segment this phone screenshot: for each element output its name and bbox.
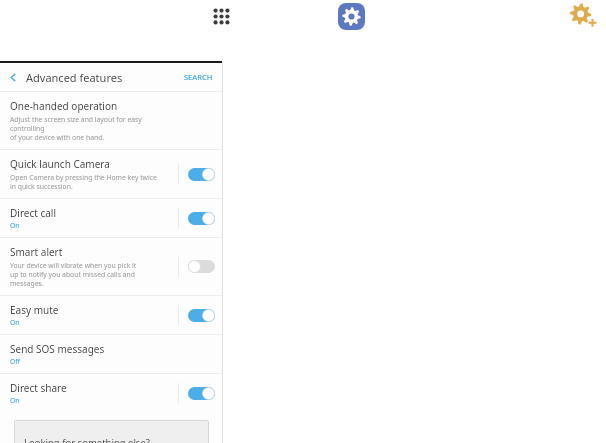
staticText: Direct call [10,206,57,220]
staticText: Advanced features [26,70,123,85]
staticText: Quick launch Camera [10,157,110,171]
staticText: Easy mute [10,303,59,317]
staticText: One-handed operation [10,99,118,113]
staticText: On [10,396,20,405]
button[interactable]: Direct call switch [179,212,223,225]
staticText: Smart alert [10,245,63,259]
button[interactable]: Easy mute switch [179,309,223,322]
button[interactable]: Back [0,63,26,91]
staticText: Looking for something else? [24,436,150,443]
staticText: Send SOS messages [10,342,105,356]
button[interactable]: Settings [338,3,365,30]
staticText: Your device will vibrate when you pick i… [10,261,137,288]
button[interactable]: Direct share [0,374,223,412]
button[interactable]: Smart alert [0,238,223,295]
button[interactable]: Send SOS messages [0,335,223,373]
button[interactable]: Direct share switch [179,387,223,400]
button[interactable]: SEARCH [184,72,213,82]
button[interactable]: Direct call [0,199,223,237]
staticText: On [10,221,20,230]
button[interactable]: One-handed operation [0,92,223,149]
staticText: On [10,318,20,327]
button[interactable]: Apps [207,2,236,31]
staticText: Direct share [10,381,67,395]
button[interactable]: Easy mute [0,296,223,334]
staticText: SEARCH [184,72,213,82]
button[interactable]: Quick launch Camera switch [179,168,223,181]
button[interactable]: Looking for something else? [14,420,209,443]
staticText: Adjust the screen size and layout for ea… [10,115,174,142]
button[interactable]: Smart alert switch [179,260,223,273]
button[interactable]: Add settings shortcut [566,1,600,35]
staticText: Open Camera by pressing the Home key twi… [10,173,157,191]
staticText: Off [10,357,20,366]
button[interactable]: Quick launch Camera [0,150,223,198]
